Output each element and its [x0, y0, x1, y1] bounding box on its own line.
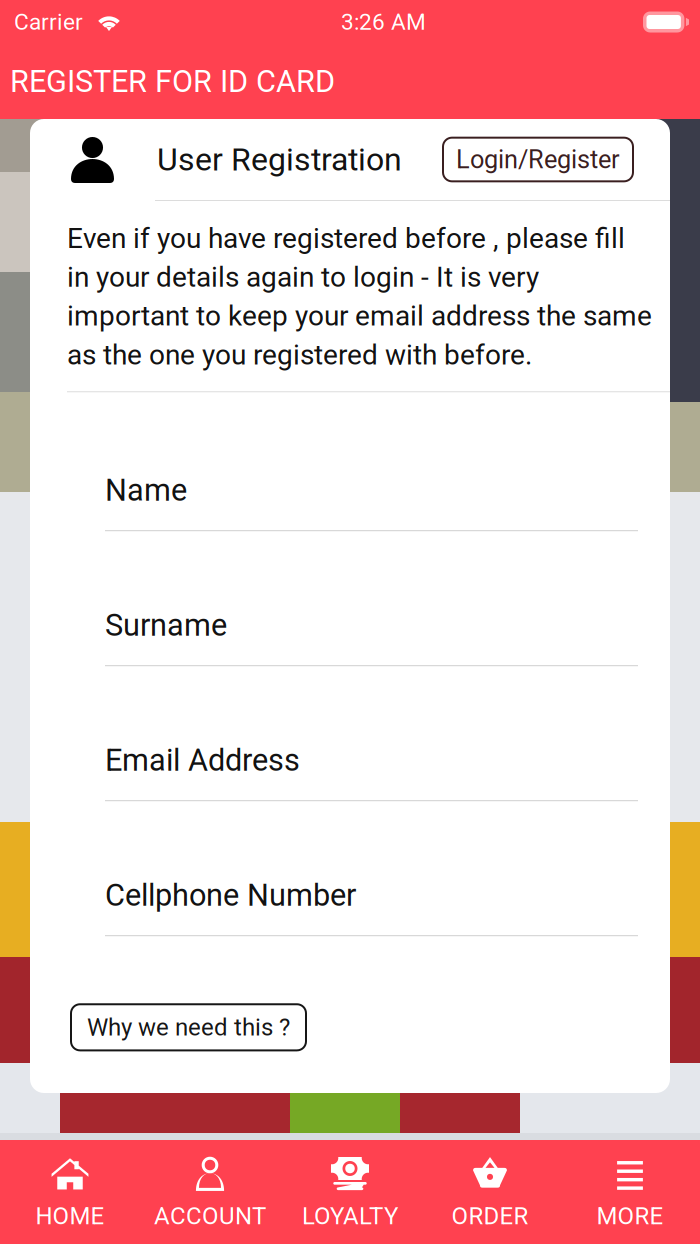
staticText: 3:26 AM [341, 9, 426, 35]
staticText: ORDER [451, 1202, 528, 1230]
staticText: Surname [105, 607, 227, 643]
button[interactable]: Why we need this ? [71, 1004, 306, 1050]
staticText: ACCOUNT [154, 1202, 266, 1230]
button[interactable]: ORDER [420, 1140, 560, 1244]
staticText: HOME [35, 1202, 104, 1230]
button[interactable]: LOYALTY [280, 1140, 420, 1244]
button[interactable]: HOME [0, 1140, 140, 1244]
staticText: Login/Register [456, 145, 620, 174]
staticText: Cellphone Number [105, 877, 356, 913]
staticText: Email Address [105, 742, 300, 778]
button[interactable]: Login/Register [443, 138, 633, 181]
button[interactable]: MORE [560, 1140, 700, 1244]
staticText: LOYALTY [302, 1202, 398, 1230]
staticText: User Registration [157, 141, 402, 178]
staticText: MORE [596, 1202, 663, 1230]
staticText: Even if you have registered before , ple… [67, 222, 652, 371]
staticText: Name [105, 472, 187, 508]
staticText: REGISTER FOR ID CARD [10, 63, 335, 99]
staticText: Carrier [14, 9, 83, 35]
button[interactable]: ACCOUNT [140, 1140, 280, 1244]
staticText: Why we need this ? [87, 1013, 290, 1041]
